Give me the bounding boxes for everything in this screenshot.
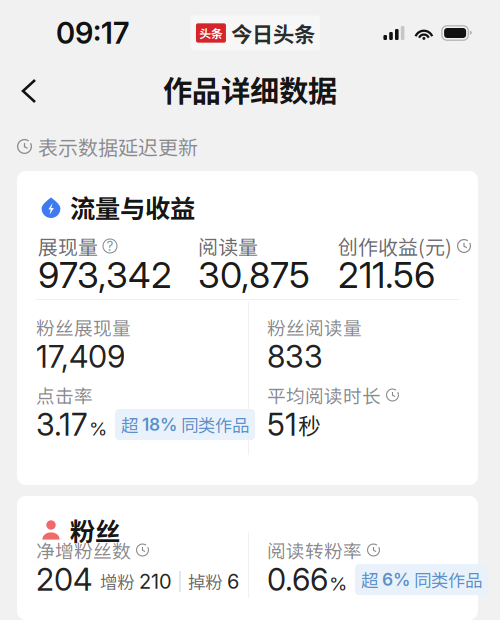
staticText: 流量与收益 — [70, 189, 195, 225]
staticText: 0.66 — [267, 561, 328, 598]
staticText: 展现量 — [38, 231, 98, 260]
staticText: 30,875 — [198, 253, 310, 297]
staticText: 210 — [139, 569, 172, 594]
staticText: 秒 — [298, 408, 321, 441]
staticText: 超 — [121, 412, 138, 437]
staticText: 211.56 — [338, 253, 435, 297]
staticText: 18% — [142, 414, 177, 435]
staticText: 833 — [267, 338, 323, 375]
staticText: % — [89, 417, 107, 440]
staticText: 点击率 — [36, 381, 93, 408]
staticText: 51 — [267, 406, 297, 443]
staticText: 增粉 — [100, 569, 134, 594]
staticText: 创作收益(元) — [338, 231, 452, 260]
staticText: 净增粉丝数 — [36, 536, 131, 563]
staticText: 阅读量 — [198, 231, 258, 260]
staticText: 头条 — [199, 24, 223, 42]
staticText: 204 — [36, 561, 92, 598]
staticText: 粉丝展现量 — [36, 313, 131, 340]
staticText: 973,342 — [38, 253, 172, 297]
staticText: 6 — [227, 569, 239, 594]
staticText: % — [329, 572, 347, 595]
staticText: 今日头条 — [231, 18, 315, 48]
staticText: 同类作品 — [181, 412, 249, 437]
staticText: 同类作品 — [414, 567, 482, 592]
button[interactable]: Back — [8, 72, 50, 110]
staticText: 平均阅读时长 — [267, 381, 381, 408]
staticText: 作品详细数据 — [163, 68, 337, 110]
staticText: 掉粉 — [188, 569, 222, 594]
staticText: 粉丝阅读量 — [267, 313, 362, 340]
staticText: 粉丝 — [70, 512, 120, 548]
staticText: 3.17 — [36, 406, 88, 443]
staticText: 超 — [361, 567, 378, 592]
staticText: | — [177, 571, 183, 592]
staticText: 09:17 — [56, 15, 129, 51]
staticText: 6% — [382, 569, 410, 590]
staticText: ? — [106, 238, 113, 254]
staticText: 17,409 — [36, 338, 125, 375]
staticText: 阅读转粉率 — [267, 536, 362, 563]
staticText: 表示数据延迟更新 — [38, 132, 198, 161]
